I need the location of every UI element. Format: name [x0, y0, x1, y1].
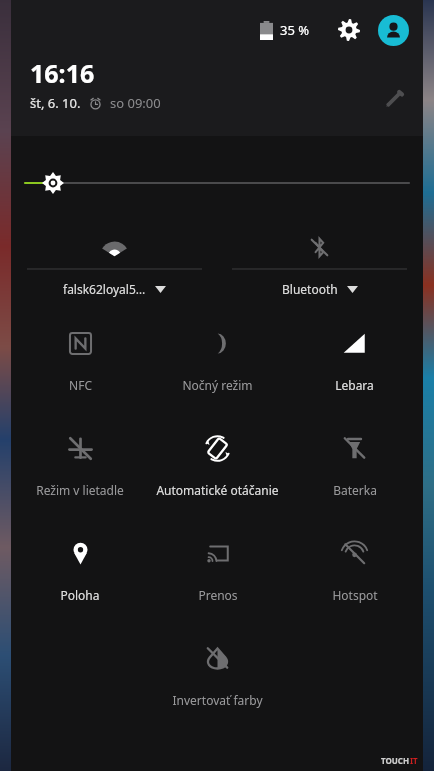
staticText: Poloha [60, 587, 100, 603]
staticText: so 09:00 [110, 94, 161, 112]
button[interactable]: Režim v lietadle [11, 422, 149, 527]
staticText: Lebara [335, 377, 374, 393]
button[interactable]: Prenos [149, 527, 286, 632]
button[interactable]: User profile [378, 15, 409, 46]
button[interactable]: Edit [378, 82, 410, 114]
button[interactable]: Nočný režim [149, 317, 286, 422]
button[interactable]: Poloha [11, 527, 149, 632]
button[interactable]: Invertovať farby [149, 632, 286, 737]
button[interactable]: Bluetooth [232, 230, 407, 297]
staticText: falsk62loyal5… [63, 281, 146, 297]
button[interactable]: Baterka [286, 422, 423, 527]
button[interactable]: Automatické otáčanie [149, 422, 286, 527]
button[interactable]: Wi-Fi [27, 230, 202, 297]
staticText: TOUCH [381, 755, 410, 766]
staticText: Hotspot [332, 587, 378, 603]
staticText: Nočný režim [182, 377, 253, 393]
staticText: št, 6. 10. [30, 94, 81, 112]
staticText: 16:16 [30, 56, 95, 90]
staticText: Automatické otáčanie [156, 482, 279, 498]
staticText: Bluetooth [282, 281, 338, 297]
button[interactable]: Brightness [25, 162, 409, 204]
staticText: 35 % [280, 21, 310, 39]
button[interactable]: NFC [11, 317, 149, 422]
staticText: NFC [69, 377, 92, 393]
staticText: Režim v lietadle [36, 482, 124, 498]
button[interactable]: Lebara [286, 317, 423, 422]
button[interactable]: Hotspot [286, 527, 423, 632]
staticText: Baterka [333, 482, 377, 498]
staticText: Prenos [198, 587, 238, 603]
staticText: IT [410, 755, 418, 766]
staticText: Invertovať farby [172, 692, 263, 708]
button[interactable]: Settings [332, 13, 366, 47]
